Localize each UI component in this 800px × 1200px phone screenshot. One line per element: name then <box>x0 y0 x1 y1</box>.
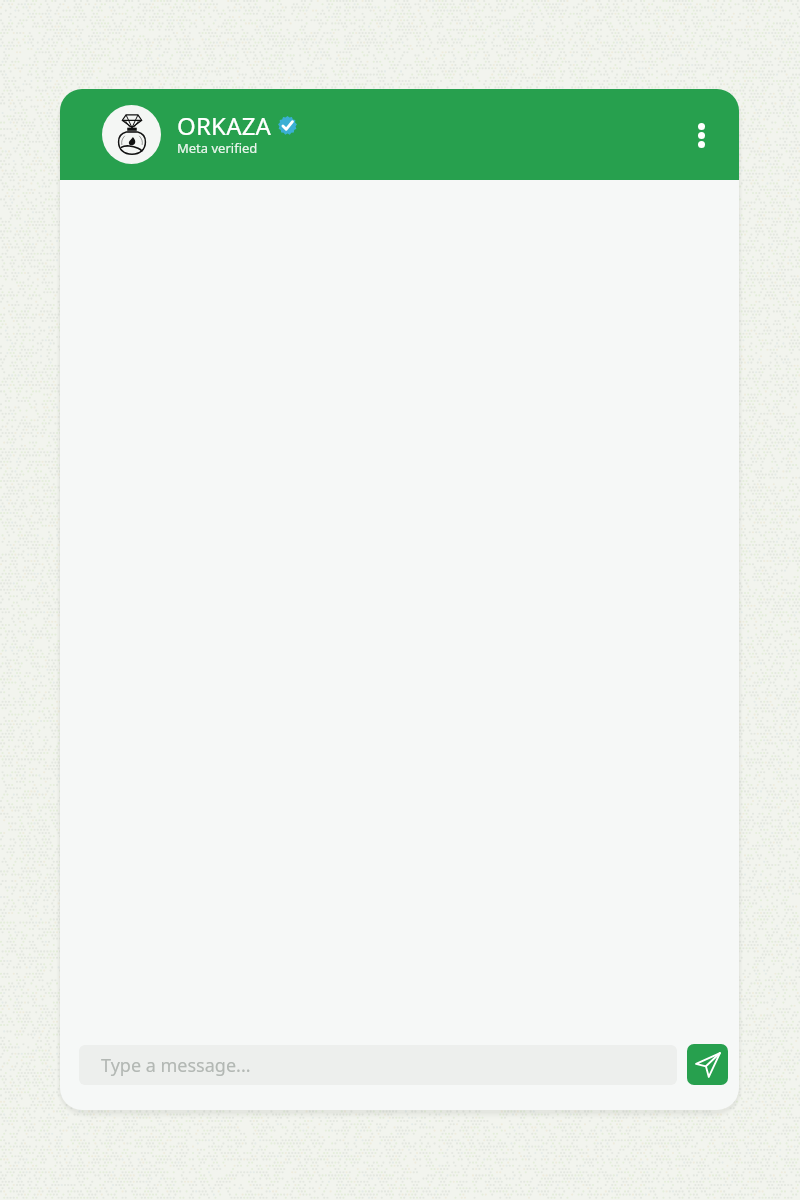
button[interactable]: More options <box>681 115 721 155</box>
staticText: ORKAZA <box>177 109 272 142</box>
button[interactable]: Type a message... <box>79 1045 677 1085</box>
staticText: Type a message... <box>101 1053 251 1078</box>
staticText: Meta verified <box>177 139 258 157</box>
button[interactable]: Send <box>687 1044 728 1085</box>
